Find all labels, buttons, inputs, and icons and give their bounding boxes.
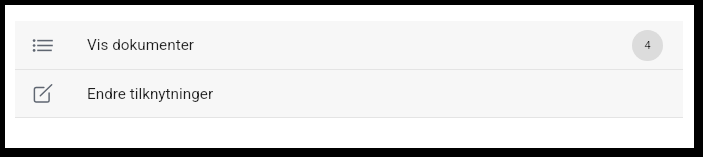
staticText: Vis dokumenter — [87, 36, 194, 54]
other: List — [33, 35, 53, 55]
other: Edit — [33, 84, 53, 104]
button[interactable]: List — [15, 21, 683, 69]
staticText: Endre tilknytninger — [87, 85, 214, 103]
staticText: 4 — [644, 39, 651, 52]
button[interactable]: Edit — [15, 70, 683, 118]
button[interactable]: 4 documents — [632, 30, 663, 61]
